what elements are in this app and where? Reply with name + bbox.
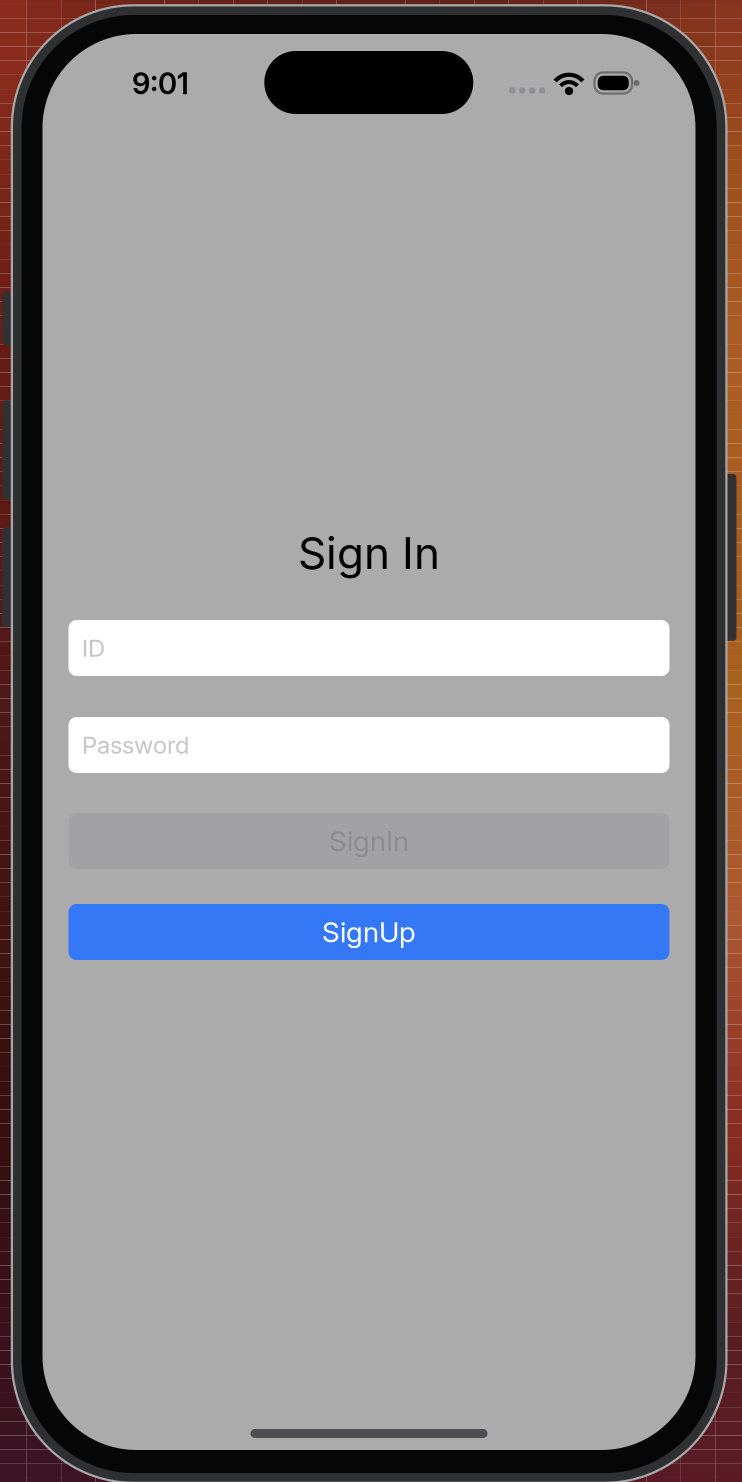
button[interactable]: SignUp — [68, 904, 669, 960]
staticText: Sign In — [298, 526, 440, 580]
button[interactable]: ID — [68, 620, 669, 676]
staticText: ID — [82, 633, 105, 662]
staticText: Password — [82, 730, 189, 759]
button[interactable]: Password — [68, 717, 669, 773]
staticText: SignIn — [329, 824, 409, 858]
staticText: 9:01 — [132, 66, 189, 101]
staticText: SignUp — [322, 915, 416, 949]
